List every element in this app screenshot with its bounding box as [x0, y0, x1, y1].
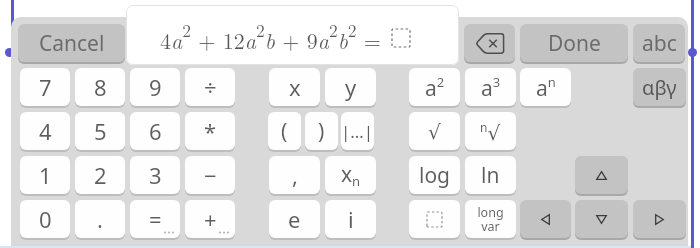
button[interactable]: *	[185, 112, 235, 150]
button[interactable]: −	[185, 156, 235, 194]
button[interactable]	[633, 200, 686, 238]
button[interactable]: 4	[20, 112, 70, 150]
staticText: 8	[94, 72, 107, 102]
staticText: =	[149, 204, 162, 234]
button[interactable]: 0	[20, 200, 70, 238]
button[interactable]: √	[409, 112, 460, 150]
staticText: 5	[94, 116, 107, 146]
button[interactable]: )	[305, 112, 338, 150]
staticText: y	[345, 72, 357, 102]
button[interactable]: long var	[465, 200, 516, 238]
staticText: ,	[292, 160, 298, 190]
staticText: 7	[39, 72, 52, 102]
staticText: x	[289, 72, 301, 102]
staticText: αβγ	[642, 74, 677, 101]
staticText: Done	[548, 29, 601, 58]
button[interactable]: y	[325, 68, 376, 106]
staticText: |…|	[341, 120, 374, 143]
button[interactable]: x	[269, 68, 320, 106]
button[interactable]: .	[75, 200, 125, 238]
staticText: a3	[481, 73, 501, 102]
button[interactable]: αβγ	[633, 68, 686, 106]
button[interactable]: 5	[75, 112, 125, 150]
staticText: ÷	[204, 72, 217, 102]
button[interactable]	[575, 200, 628, 238]
button[interactable]: i	[325, 200, 376, 238]
button[interactable]: |…|	[341, 112, 374, 150]
staticText: i	[348, 204, 354, 234]
button[interactable]: =	[130, 200, 180, 238]
button[interactable]	[520, 200, 571, 238]
staticText: +	[204, 204, 217, 234]
button[interactable]: 8	[75, 68, 125, 106]
staticText: 1	[39, 160, 52, 190]
staticText: e	[288, 204, 301, 234]
staticText: n√	[480, 119, 501, 144]
staticText: abc	[642, 29, 677, 58]
staticText: (	[281, 117, 288, 146]
button[interactable]: Done	[520, 24, 628, 62]
button[interactable]: a2	[409, 68, 460, 106]
button[interactable]: 4a2 + 12a2b + 9a2b2 =	[126, 5, 459, 65]
staticText: √	[428, 120, 441, 143]
button[interactable]	[464, 24, 515, 62]
staticText: 6	[149, 116, 162, 146]
button[interactable]	[409, 200, 460, 238]
staticText: long var	[477, 204, 504, 235]
button[interactable]: e	[269, 200, 320, 238]
button[interactable]: 3	[130, 156, 180, 194]
staticText: −	[204, 160, 217, 190]
staticText: ln	[481, 161, 500, 190]
button[interactable]: ,	[269, 156, 320, 194]
button[interactable]	[575, 156, 628, 194]
staticText: log	[419, 161, 451, 190]
button[interactable]: abc	[633, 24, 685, 62]
staticText: 0	[39, 204, 52, 234]
staticText: Cancel	[39, 29, 105, 58]
button[interactable]: ln	[465, 156, 516, 194]
button[interactable]: log	[409, 156, 460, 194]
staticText: *	[204, 116, 217, 146]
button[interactable]: xn	[325, 156, 376, 194]
staticText: 9	[149, 72, 162, 102]
button[interactable]: ÷	[185, 68, 235, 106]
button[interactable]: 9	[130, 68, 180, 106]
staticText: .	[97, 204, 103, 234]
button[interactable]: an	[520, 68, 571, 106]
staticText: an	[536, 73, 556, 102]
button[interactable]: 1	[20, 156, 70, 194]
staticText: 2	[94, 160, 107, 190]
button[interactable]: a3	[465, 68, 516, 106]
button[interactable]: 7	[20, 68, 70, 106]
staticText: 4	[39, 116, 52, 146]
button[interactable]: n√	[465, 112, 516, 150]
staticText: xn	[341, 160, 361, 190]
staticText: )	[318, 117, 325, 146]
button[interactable]: +	[185, 200, 235, 238]
button[interactable]: 6	[130, 112, 180, 150]
staticText: 3	[149, 160, 162, 190]
button[interactable]: Cancel	[18, 24, 125, 62]
button[interactable]: 2	[75, 156, 125, 194]
staticText: 4a2 + 12a2b + 9a2b2 =	[160, 17, 389, 55]
staticText: a2	[425, 73, 445, 102]
button[interactable]: (	[268, 112, 301, 150]
